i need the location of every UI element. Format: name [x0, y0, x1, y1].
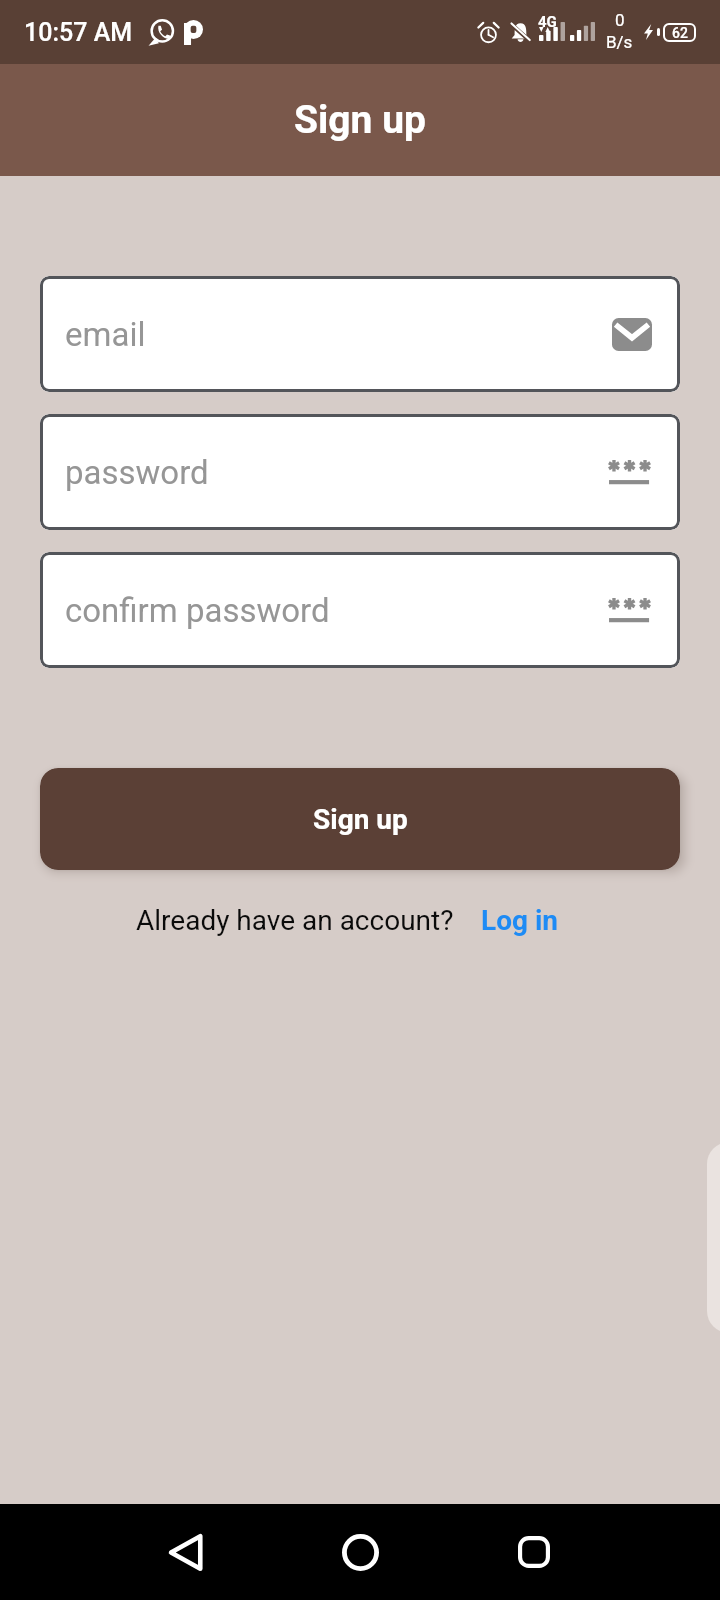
button[interactable]: Sign up	[40, 768, 680, 870]
button[interactable]: Back	[138, 1504, 234, 1600]
staticText: 62	[672, 25, 688, 41]
staticText: confirm password	[65, 591, 330, 630]
button[interactable]: Home	[312, 1504, 408, 1600]
staticText: B/s	[606, 32, 633, 52]
button[interactable]: password	[40, 414, 680, 530]
staticText: Already have an account?	[136, 904, 454, 937]
staticText: Log in	[481, 904, 559, 937]
staticText: 4G	[538, 13, 557, 31]
button[interactable]: Recent apps	[486, 1504, 582, 1600]
button[interactable]: Log in	[481, 904, 559, 937]
button[interactable]: email	[40, 276, 680, 392]
staticText: password	[65, 453, 209, 492]
staticText: Sign up	[313, 803, 408, 836]
button[interactable]: confirm password	[40, 552, 680, 668]
staticText: Sign up	[294, 97, 426, 143]
staticText: email	[65, 315, 146, 354]
staticText: 0	[615, 10, 625, 30]
staticText: 10:57 AM	[24, 18, 133, 47]
